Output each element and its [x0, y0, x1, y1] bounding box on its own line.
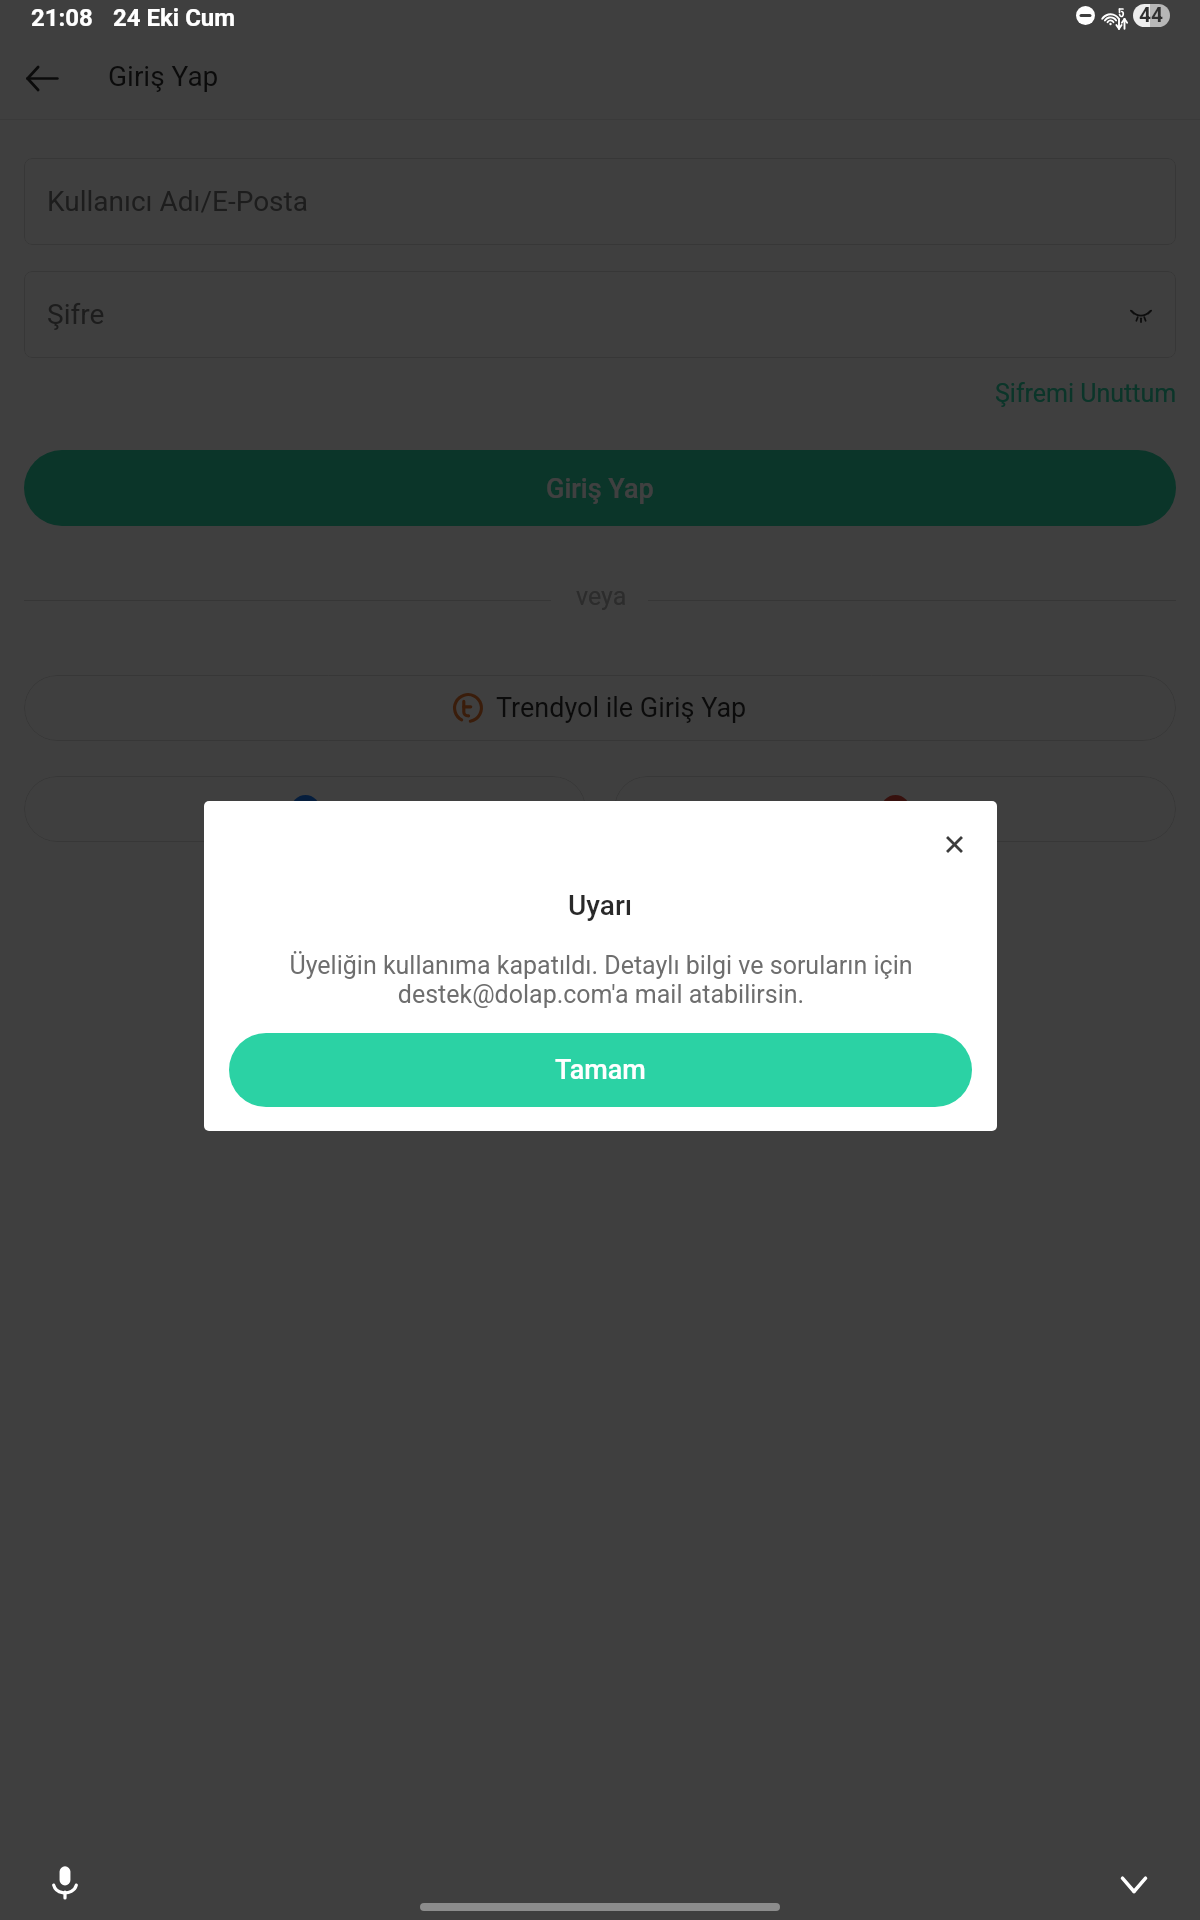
staticText: Tamam — [555, 1054, 646, 1086]
button[interactable]: Klavyeyi gizle — [1105, 1855, 1163, 1913]
button[interactable]: Giriş Yap — [24, 450, 1176, 526]
staticText: Şifremi Unuttum — [995, 379, 1177, 408]
staticText: veya — [576, 582, 627, 611]
staticText: Trendyol ile Giriş Yap — [496, 692, 747, 724]
staticText: Giriş Yap — [108, 60, 219, 93]
button[interactable]: Şifreyi göster — [1118, 292, 1164, 338]
button[interactable]: Facebook ile giriş yap — [24, 776, 586, 842]
button[interactable]: Kapat — [923, 813, 985, 875]
button[interactable]: Google ile giriş yap — [614, 776, 1176, 842]
staticText: 21:08 — [31, 4, 93, 32]
button[interactable]: Trendyol ile Giriş Yap — [24, 675, 1176, 741]
button[interactable]: Geri — [14, 50, 70, 106]
button[interactable]: Sesli giriş — [36, 1853, 94, 1911]
staticText: Uyarı — [568, 889, 633, 922]
button[interactable]: Kullanıcı Adı/E-Posta — [24, 158, 1176, 245]
staticText: 24 Eki Cum — [113, 4, 236, 32]
button[interactable]: Şifremi Unuttum — [985, 373, 1187, 413]
button[interactable]: Tamam — [229, 1033, 972, 1107]
staticText: Giriş Yap — [546, 473, 654, 505]
staticText: Üyeliğin kullanıma kapatıldı. Detaylı bi… — [261, 951, 941, 1009]
staticText: Şifre — [47, 298, 105, 331]
staticText: Kullanıcı Adı/E-Posta — [47, 185, 308, 218]
staticText: 44 — [1139, 4, 1164, 26]
